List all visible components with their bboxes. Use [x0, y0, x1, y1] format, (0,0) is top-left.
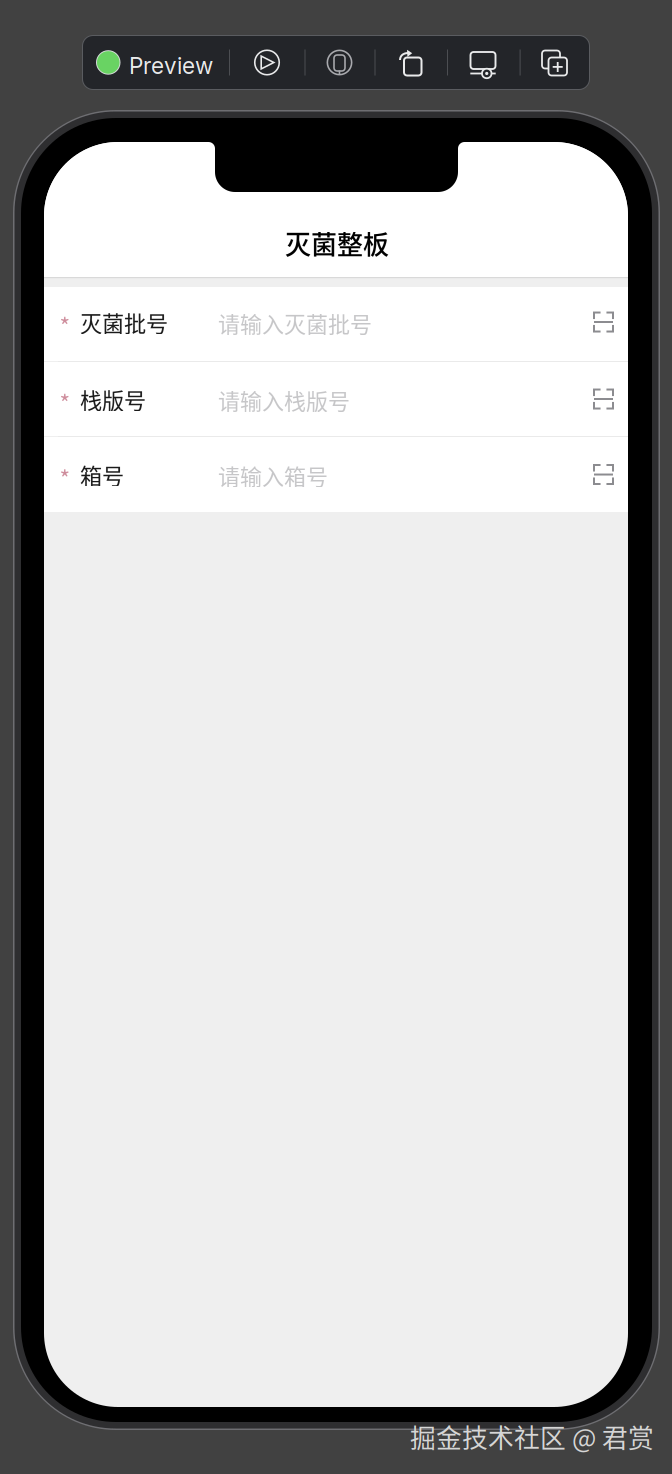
staticText: 灭菌批号	[80, 306, 168, 338]
staticText: 灭菌整板	[285, 224, 389, 262]
button[interactable]: Add preview	[519, 36, 589, 89]
staticText: *	[59, 461, 70, 494]
staticText: *	[59, 385, 70, 418]
staticText: 栈版号	[80, 383, 146, 415]
button[interactable]: Preview device	[304, 36, 374, 89]
staticText: 请输入箱号	[218, 459, 328, 491]
staticText: Preview	[129, 52, 213, 79]
staticText: 箱号	[80, 458, 124, 490]
button[interactable]: Run preview	[232, 36, 302, 89]
staticText: *	[59, 308, 70, 341]
staticText: 请输入栈版号	[218, 384, 350, 416]
button[interactable]: *	[44, 362, 628, 436]
button[interactable]: Display settings	[448, 36, 518, 89]
staticText: 掘金技术社区 @ 君赏	[410, 1418, 654, 1455]
staticText: 请输入灭菌批号	[218, 307, 372, 339]
button[interactable]: Preview	[83, 36, 229, 89]
button[interactable]: *	[44, 287, 628, 361]
button[interactable]: Rotate device	[375, 36, 445, 89]
button[interactable]: *	[44, 437, 628, 512]
